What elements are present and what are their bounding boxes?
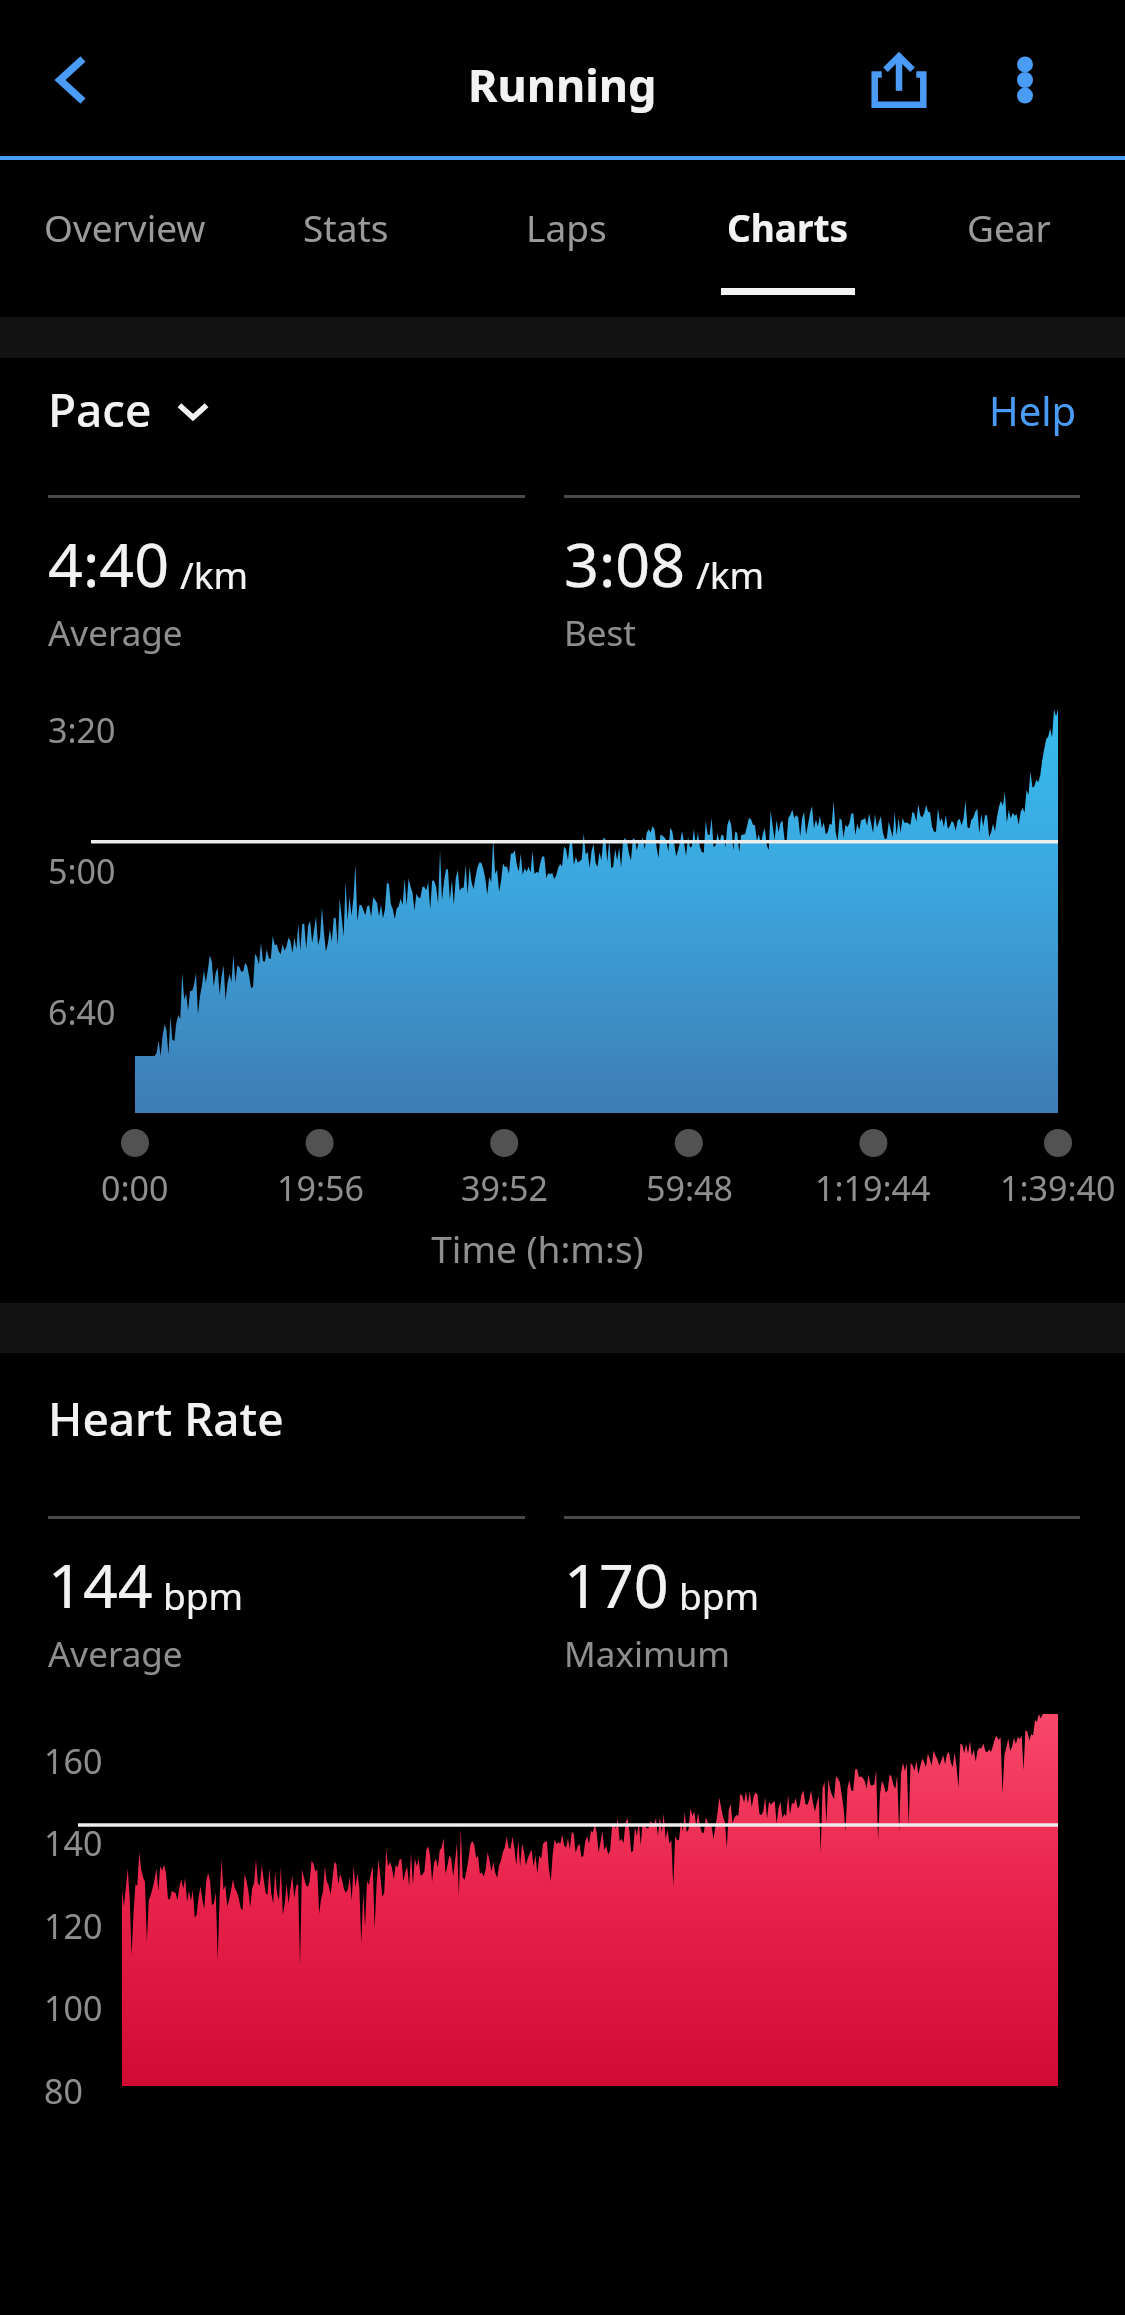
button[interactable]: Back — [28, 37, 114, 123]
staticText: Best — [564, 609, 636, 657]
staticText: Laps — [526, 202, 607, 252]
button[interactable]: Pace — [48, 378, 210, 441]
button[interactable]: Charts — [677, 160, 898, 317]
staticText: Overview — [44, 202, 206, 252]
staticText: Average — [48, 609, 183, 657]
staticText: Time (h:m:s) — [0, 1223, 1075, 1273]
staticText: 5:00 — [48, 848, 116, 894]
staticText: Pace — [48, 378, 152, 441]
staticText: 140 — [44, 1820, 103, 1866]
staticText: 120 — [44, 1903, 103, 1949]
staticText: Gear — [967, 202, 1051, 252]
button[interactable]: Help — [989, 383, 1077, 437]
staticText: /km — [696, 549, 765, 599]
staticText: 6:40 — [48, 989, 116, 1035]
button[interactable]: Overview — [14, 160, 235, 317]
button[interactable]: Share — [851, 32, 947, 128]
staticText: Charts — [727, 202, 849, 252]
staticText: 39:52 — [461, 1165, 548, 1211]
staticText: 1:19:44 — [815, 1165, 931, 1211]
button[interactable]: Laps — [456, 160, 677, 317]
staticText: 59:48 — [646, 1165, 733, 1211]
staticText: 144 — [48, 1543, 153, 1626]
staticText: /km — [180, 549, 249, 599]
staticText: 170 — [564, 1543, 669, 1626]
staticText: 160 — [44, 1738, 103, 1784]
button[interactable]: More options — [977, 32, 1073, 128]
staticText: 80 — [44, 2068, 83, 2114]
staticText: 3:20 — [48, 707, 116, 753]
staticText: 4:40 — [48, 522, 170, 605]
staticText: Average — [48, 1630, 183, 1678]
staticText: 19:56 — [277, 1165, 364, 1211]
button[interactable]: Gear — [898, 160, 1119, 317]
staticText: bpm — [679, 1570, 760, 1620]
staticText: 100 — [44, 1985, 103, 2031]
staticText: Heart Rate — [48, 1387, 284, 1450]
staticText: Help — [989, 383, 1077, 437]
staticText: 3:08 — [564, 522, 686, 605]
staticText: bpm — [163, 1570, 244, 1620]
staticText: Running — [468, 54, 657, 115]
staticText: 0:00 — [101, 1165, 169, 1211]
staticText: 1:39:40 — [1000, 1165, 1116, 1211]
staticText: Stats — [303, 202, 389, 252]
staticText: Maximum — [564, 1630, 731, 1678]
button[interactable]: Stats — [235, 160, 456, 317]
